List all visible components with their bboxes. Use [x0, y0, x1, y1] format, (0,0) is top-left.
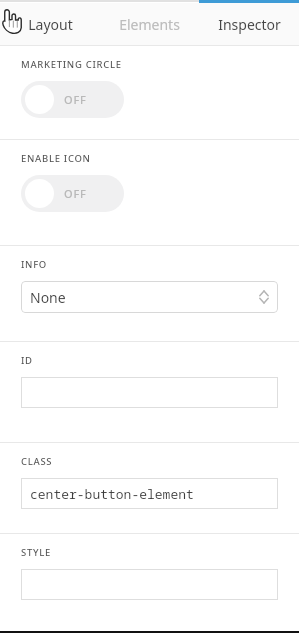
button[interactable]: center-button-element	[21, 478, 278, 509]
other: Open options	[259, 289, 269, 305]
staticText: OFF	[64, 186, 87, 201]
staticText: ID	[21, 354, 33, 367]
staticText: None	[30, 288, 66, 307]
staticText: Elements	[119, 15, 180, 34]
button[interactable]: Toggle off	[21, 81, 124, 118]
button[interactable]: Toggle off	[21, 175, 124, 212]
staticText: OFF	[64, 92, 87, 107]
staticText: ENABLE ICON	[21, 152, 91, 165]
other: Pointer	[1, 8, 23, 34]
button[interactable]: Layout	[0, 3, 100, 45]
staticText: Inspector	[218, 15, 281, 34]
staticText: MARKETING CIRCLE	[21, 58, 122, 71]
staticText: CLASS	[21, 455, 53, 468]
button[interactable]: Elements	[100, 3, 199, 45]
button[interactable]: Text input	[21, 569, 278, 600]
button[interactable]: Text input	[21, 377, 278, 408]
button[interactable]: Inspector	[199, 3, 299, 45]
button[interactable]: None	[21, 281, 278, 313]
staticText: Layout	[28, 15, 73, 34]
staticText: STYLE	[21, 546, 51, 559]
staticText: INFO	[21, 258, 47, 271]
staticText: center-button-element	[30, 485, 194, 503]
